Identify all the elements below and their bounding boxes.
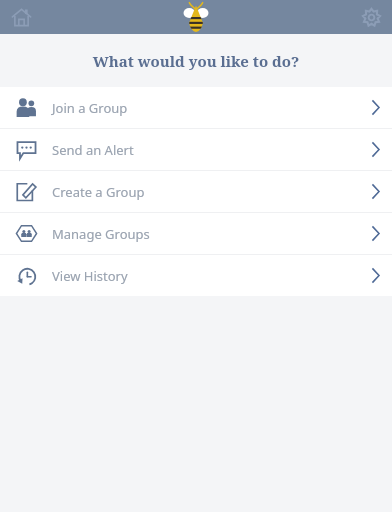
staticText: Join a Group bbox=[52, 99, 128, 117]
button[interactable]: Send an Alert bbox=[0, 129, 392, 170]
button[interactable]: Home bbox=[4, 0, 38, 34]
button[interactable]: View History bbox=[0, 255, 392, 296]
staticText: View History bbox=[52, 267, 128, 285]
staticText: Manage Groups bbox=[52, 225, 150, 243]
button[interactable]: Manage Groups bbox=[0, 213, 392, 254]
button[interactable]: Settings bbox=[354, 0, 388, 34]
staticText: Send an Alert bbox=[52, 141, 134, 159]
button[interactable]: Home logo bbox=[179, 0, 213, 34]
staticText: What would you like to do? bbox=[0, 51, 392, 71]
button[interactable]: Join a Group bbox=[0, 87, 392, 128]
staticText: Create a Group bbox=[52, 183, 145, 201]
button[interactable]: Create a Group bbox=[0, 171, 392, 212]
